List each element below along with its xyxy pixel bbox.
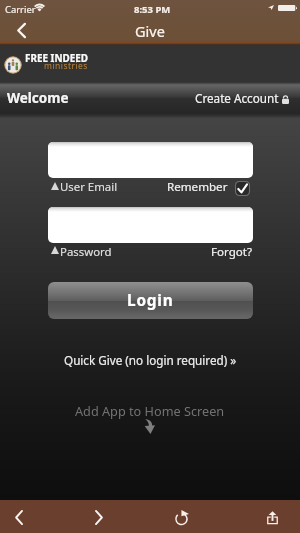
staticText: Give [135, 21, 165, 41]
staticText: Quick Give (no login required) » [64, 352, 237, 368]
button[interactable]: Share [255, 500, 289, 533]
staticText: Password [60, 244, 112, 260]
button[interactable]: Free Indeed Ministries logo [4, 56, 22, 74]
staticText: User Email [60, 179, 118, 195]
staticText: Welcome [7, 89, 69, 107]
button[interactable]: Login [48, 282, 253, 319]
staticText: FREE INDEED [25, 51, 89, 64]
staticText: Forgot? [211, 244, 253, 260]
button[interactable]: Password field [48, 207, 253, 243]
staticText: 8:53 PM [134, 3, 171, 16]
button[interactable]: Create Account [195, 90, 289, 106]
staticText: Remember [167, 179, 228, 195]
staticText: Add App to Home Screen [75, 402, 225, 419]
button[interactable]: Back [2, 500, 36, 533]
button[interactable]: Forward [82, 500, 116, 533]
staticText: ministries [44, 60, 88, 72]
button[interactable]: User Email field [48, 142, 253, 178]
staticText: Create Account [195, 90, 279, 106]
button[interactable]: Forgot? [211, 244, 253, 260]
staticText: Login [127, 290, 174, 311]
button[interactable]: Back [4, 18, 38, 42]
staticText: Carrier [5, 3, 36, 16]
button[interactable]: Quick Give (no login required) » [0, 351, 300, 369]
button[interactable]: Reload [165, 500, 199, 533]
button[interactable]: Remember me checkbox [235, 181, 250, 196]
